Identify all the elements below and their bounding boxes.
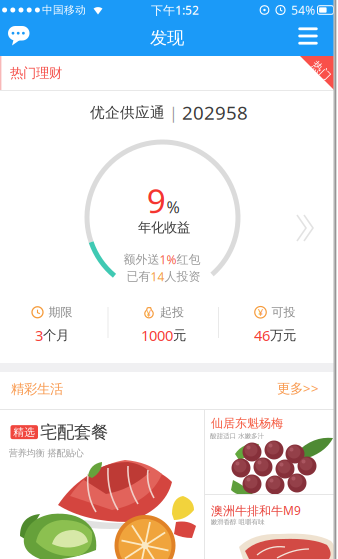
staticText: 下午1:52: [151, 2, 199, 18]
staticText: 期限: [48, 305, 72, 320]
staticText: 3: [35, 326, 43, 345]
staticText: 起投: [160, 305, 184, 320]
staticText: 14: [150, 268, 164, 284]
staticText: 年化收益: [138, 219, 190, 236]
staticText: 营养均衡 搭配贴心: [8, 447, 83, 459]
staticText: 热门: [310, 64, 332, 77]
staticText: %: [166, 196, 179, 218]
staticText: 万元: [270, 327, 296, 344]
button[interactable]: Messages: [4, 22, 34, 50]
button[interactable]: 澳洲牛排和牛M9: [205, 495, 334, 559]
staticText: 优企供应通: [90, 103, 165, 121]
staticText: 发现: [150, 27, 184, 49]
staticText: 46: [254, 326, 270, 345]
staticText: 红包: [176, 252, 200, 267]
staticText: 个月: [43, 327, 69, 344]
staticText: 澳洲牛排和牛M9: [211, 502, 301, 518]
staticText: 酸甜适口 水嫩多汁: [183, 428, 291, 444]
button[interactable]: 优企供应通: [0, 91, 334, 363]
staticText: 1000: [141, 326, 173, 345]
button[interactable]: 仙居东魁杨梅: [205, 410, 334, 494]
staticText: 精选: [13, 426, 35, 439]
staticText: ¥: [258, 306, 263, 318]
staticText: 宅配套餐: [40, 421, 108, 443]
button[interactable]: 更多>>: [272, 376, 324, 400]
staticText: 已有: [126, 269, 150, 284]
button[interactable]: Menu: [294, 23, 322, 49]
staticText: 54%: [291, 2, 315, 18]
staticText: 热门理财: [10, 65, 62, 81]
staticText: |: [165, 102, 182, 123]
staticText: 202958: [182, 100, 248, 125]
staticText: 9: [147, 178, 166, 222]
staticText: 更多>>: [277, 379, 319, 397]
staticText: 嫩滑香醇 咀嚼有味: [183, 514, 291, 530]
staticText: 元: [173, 327, 186, 344]
staticText: ¥: [146, 308, 151, 319]
staticText: 中国移动: [42, 3, 86, 16]
staticText: 1%: [159, 251, 176, 267]
staticText: 仙居东魁杨梅: [211, 416, 283, 431]
staticText: 额外送: [123, 252, 159, 267]
staticText: 精彩生活: [11, 381, 63, 397]
staticText: 人投资: [164, 269, 200, 284]
button[interactable]: 精选: [0, 410, 204, 559]
staticText: 可投: [271, 305, 295, 320]
